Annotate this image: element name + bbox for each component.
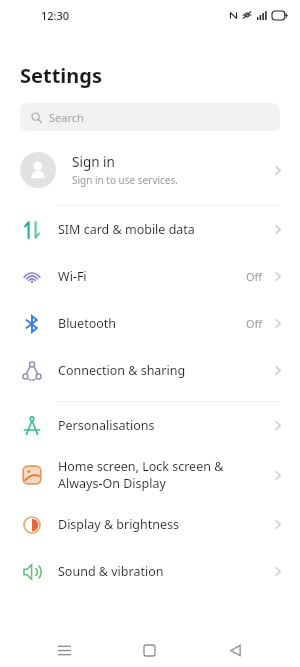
staticText: Off	[246, 316, 263, 331]
button[interactable]: Bluetooth	[0, 300, 300, 347]
button[interactable]: Home	[128, 633, 170, 667]
button[interactable]: SIM card & mobile data	[0, 206, 300, 253]
staticText: Personalisations	[58, 417, 274, 434]
button[interactable]: Search	[20, 103, 280, 131]
staticText: Sound & vibration	[58, 563, 274, 580]
staticText: Off	[246, 269, 263, 284]
button[interactable]: Home screen, Lock screen & Always-On Dis…	[0, 449, 300, 501]
staticText: SIM card & mobile data	[58, 221, 274, 238]
staticText: Search	[49, 110, 84, 125]
staticText: Display & brightness	[58, 516, 274, 533]
button[interactable]: Personalisations	[0, 402, 300, 449]
staticText: Connection & sharing	[58, 362, 274, 379]
button[interactable]: Sign in	[0, 143, 300, 197]
button[interactable]: Wi-Fi	[0, 253, 300, 300]
staticText: Sign in to use services.	[72, 173, 178, 187]
button[interactable]: Display & brightness	[0, 501, 300, 548]
staticText: Wi-Fi	[58, 268, 246, 285]
button[interactable]: Connection & sharing	[0, 347, 300, 394]
button[interactable]: Recents	[43, 633, 85, 667]
staticText: 12:30	[41, 8, 70, 23]
button[interactable]: Back	[214, 633, 256, 667]
staticText: Settings	[20, 62, 102, 89]
staticText: Bluetooth	[58, 315, 246, 332]
button[interactable]: Sound & vibration	[0, 548, 300, 595]
staticText: Sign in	[72, 153, 115, 171]
staticText: Home screen, Lock screen & Always-On Dis…	[58, 458, 274, 492]
